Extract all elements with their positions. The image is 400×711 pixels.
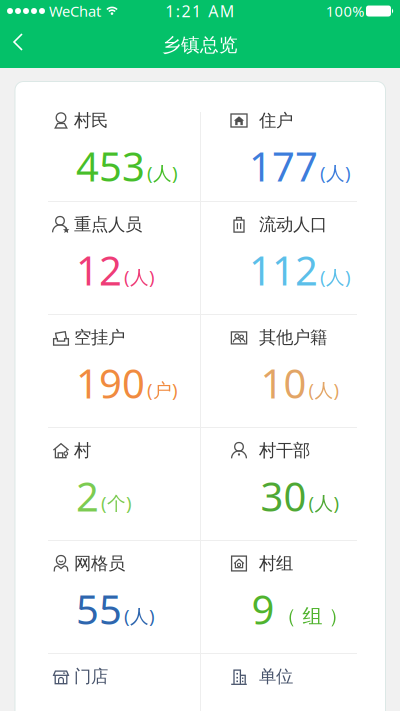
staticText: 112: [249, 243, 318, 296]
staticText: 网格员: [74, 553, 125, 574]
staticText: (个): [101, 490, 132, 515]
button[interactable]: 村民: [16, 97, 200, 210]
staticText: 门店: [74, 666, 108, 687]
staticText: WeChat: [49, 1, 101, 21]
staticText: 重点人员: [74, 214, 142, 235]
staticText: 177: [249, 139, 318, 192]
staticText: 55: [76, 582, 122, 635]
button[interactable]: 村: [16, 427, 200, 540]
staticText: 乡镇总览: [162, 33, 238, 56]
staticText: 其他户籍: [259, 327, 327, 348]
staticText: 2: [76, 469, 99, 522]
staticText: 住户: [259, 110, 293, 131]
staticText: (人): [124, 603, 155, 628]
button[interactable]: 村组: [201, 540, 385, 653]
staticText: 村民: [74, 110, 108, 131]
staticText: 12: [76, 243, 122, 296]
staticText: 9: [251, 582, 274, 635]
button[interactable]: 重点人员: [16, 201, 200, 314]
staticText: 单位: [259, 666, 293, 687]
staticText: 10: [260, 356, 306, 409]
button[interactable]: 网格员: [16, 540, 200, 653]
staticText: 453: [76, 139, 145, 192]
staticText: (户): [147, 377, 178, 402]
staticText: 村: [74, 440, 91, 461]
staticText: (人): [320, 264, 351, 289]
button[interactable]: 流动人口: [201, 201, 385, 314]
staticText: 30: [260, 469, 306, 522]
staticText: (人): [124, 264, 155, 289]
staticText: (人): [308, 377, 339, 402]
staticText: 村组: [259, 553, 293, 574]
staticText: (人): [308, 490, 339, 515]
button[interactable]: 单位: [201, 653, 385, 711]
staticText: 流动人口: [259, 214, 327, 235]
staticText: (人): [320, 160, 351, 185]
staticText: (人): [147, 160, 178, 185]
button[interactable]: 空挂户: [16, 314, 200, 427]
staticText: 村干部: [259, 440, 310, 461]
staticText: 100%: [326, 1, 364, 21]
staticText: 190: [76, 356, 145, 409]
button[interactable]: Back: [0, 25, 28, 64]
button[interactable]: 住户: [201, 97, 385, 210]
button[interactable]: 门店: [16, 653, 200, 711]
staticText: 空挂户: [74, 327, 125, 348]
staticText: （组）: [276, 604, 348, 629]
staticText: 1:21 AM: [165, 0, 235, 22]
button[interactable]: 其他户籍: [201, 314, 385, 427]
button[interactable]: 村干部: [201, 427, 385, 540]
